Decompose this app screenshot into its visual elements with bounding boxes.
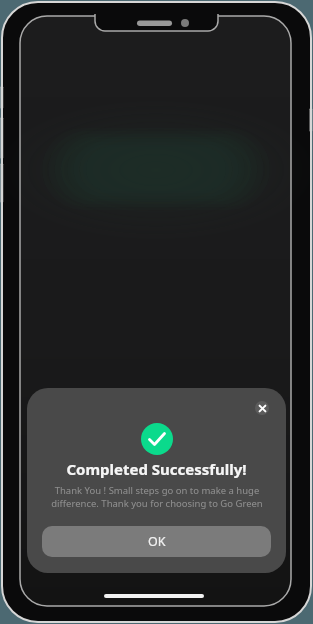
staticText: Thank You ! Small steps go on to make a … [51,484,263,510]
staticText: Completed Successfully! [66,459,247,479]
staticText: OK [148,533,166,550]
button[interactable]: OK [42,526,271,557]
button[interactable] [255,401,269,415]
